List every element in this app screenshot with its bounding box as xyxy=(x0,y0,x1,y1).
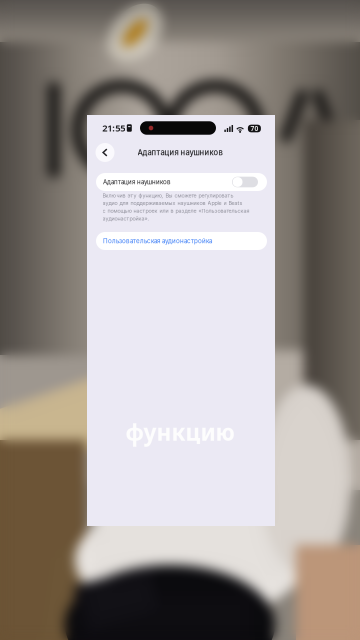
staticText: аудио для поддерживаемых наушников Apple… xyxy=(102,200,242,206)
button[interactable]: Назад xyxy=(93,141,116,164)
button[interactable]: Пользовательская аудионастройка xyxy=(96,232,267,250)
staticText: функцию xyxy=(125,417,234,447)
staticText: аудионастройка». xyxy=(102,215,149,222)
staticText: Пользовательская аудионастройка xyxy=(103,237,212,245)
button[interactable]: Адаптация наушников xyxy=(96,173,267,191)
staticText: 21:55 xyxy=(102,122,125,134)
staticText: Адаптация наушников xyxy=(103,178,170,186)
staticText: 70 xyxy=(250,124,258,133)
staticText: Включив эту функцию, Вы сможете регулиро… xyxy=(102,192,233,199)
staticText: Адаптация наушников xyxy=(137,148,222,157)
staticText: с помощью настроек или в разделе «Пользо… xyxy=(102,208,249,214)
